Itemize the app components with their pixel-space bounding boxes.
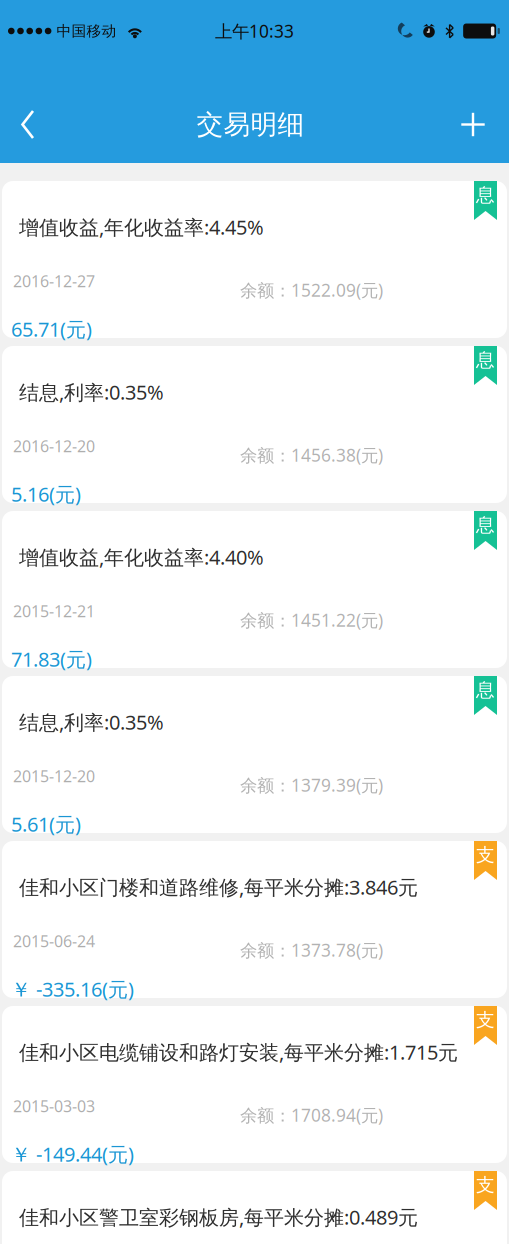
staticText: 支 — [476, 843, 495, 866]
staticText: 2015-03-03 — [13, 1095, 95, 1117]
staticText: 2015-06-24 — [13, 930, 95, 952]
staticText: ￥ -335.16(元) — [11, 976, 134, 1002]
staticText: 5.16(元) — [11, 481, 81, 507]
staticText: 余额：1522.09(元) — [240, 278, 383, 301]
staticText: 息 — [476, 678, 495, 701]
staticText: 佳和小区门楼和道路维修,每平米分摊:3.846元 — [19, 874, 418, 900]
staticText: 余额：1379.39(元) — [240, 773, 383, 796]
staticText: 中国移动 — [56, 22, 116, 40]
staticText: 息 — [476, 348, 495, 371]
staticText: 佳和小区电缆铺设和路灯安装,每平米分摊:1.715元 — [19, 1039, 458, 1065]
staticText: 息 — [476, 513, 495, 536]
staticText: 增值收益,年化收益率:4.45% — [19, 214, 264, 240]
staticText: 支 — [476, 1008, 495, 1031]
staticText: 71.83(元) — [11, 646, 92, 672]
button[interactable]: 增值收益,年化收益率:4.40% — [2, 511, 507, 668]
button[interactable]: 佳和小区门楼和道路维修,每平米分摊:3.846元 — [2, 841, 507, 998]
staticText: 余额：1451.22(元) — [240, 608, 383, 631]
staticText: 佳和小区警卫室彩钢板房,每平米分摊:0.489元 — [19, 1204, 418, 1230]
staticText: 上午10:33 — [215, 19, 294, 42]
staticText: 2016-12-27 — [13, 270, 95, 292]
staticText: 结息,利率:0.35% — [19, 379, 164, 405]
button[interactable]: 佳和小区电缆铺设和路灯安装,每平米分摊:1.715元 — [2, 1006, 507, 1163]
staticText: 2015-12-20 — [13, 765, 95, 787]
button[interactable]: 结息,利率:0.35% — [2, 676, 507, 833]
button[interactable]: 佳和小区警卫室彩钢板房,每平米分摊:0.489元 — [2, 1171, 507, 1244]
staticText: 交易明细 — [196, 108, 304, 141]
staticText: 支 — [476, 1173, 495, 1196]
staticText: 余额：1456.38(元) — [240, 443, 383, 466]
staticText: 息 — [476, 183, 495, 206]
staticText: 增值收益,年化收益率:4.40% — [19, 544, 264, 570]
staticText: 65.71(元) — [11, 316, 92, 342]
button[interactable]: 添加 — [445, 62, 501, 163]
staticText: 结息,利率:0.35% — [19, 709, 164, 735]
staticText: 2015-12-21 — [13, 600, 95, 622]
button[interactable]: 结息,利率:0.35% — [2, 346, 507, 503]
staticText: 余额：1708.94(元) — [240, 1103, 383, 1126]
staticText: ￥ -149.44(元) — [11, 1141, 134, 1167]
staticText: 5.61(元) — [11, 811, 81, 837]
staticText: 余额：1373.78(元) — [240, 938, 383, 961]
staticText: 2016-12-20 — [13, 435, 95, 457]
button[interactable]: 增值收益,年化收益率:4.45% — [2, 181, 507, 338]
button[interactable]: 返回 — [0, 62, 56, 163]
